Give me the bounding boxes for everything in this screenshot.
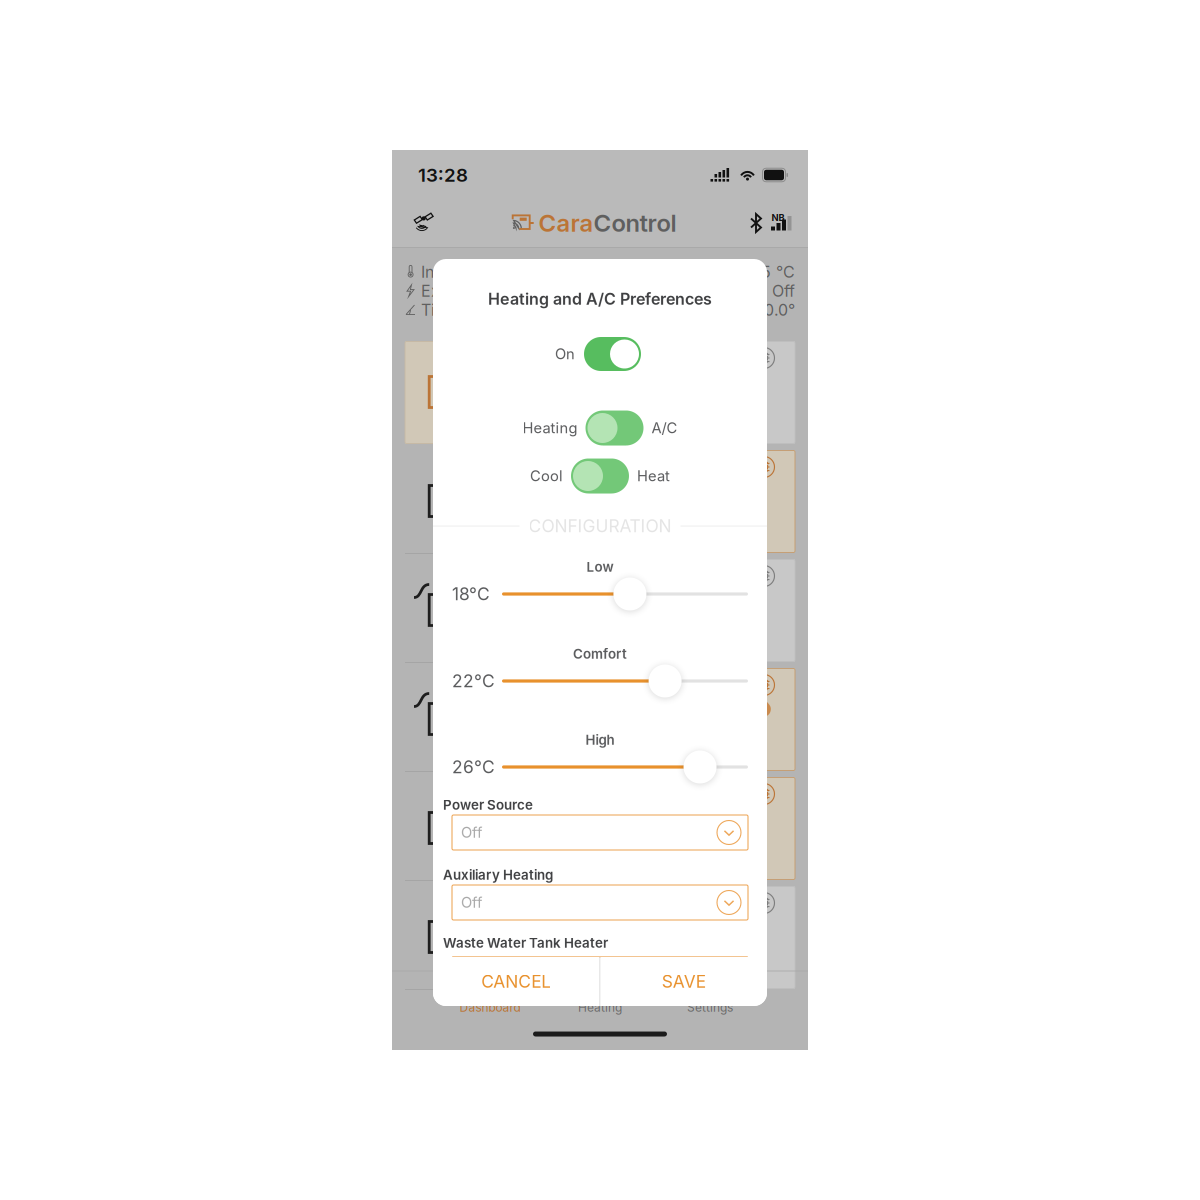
button[interactable]: Cool or Heat — [571, 458, 629, 493]
button[interactable]: Off — [452, 885, 748, 920]
staticText: On — [555, 345, 575, 363]
staticText: Heating — [522, 419, 577, 437]
staticText: SAVE — [662, 971, 706, 992]
staticText: NB — [771, 212, 784, 223]
staticText: Control — [593, 208, 676, 237]
staticText: Settings — [687, 1000, 733, 1015]
staticText: Inside temperature — [421, 262, 561, 282]
button[interactable]: Settings — [655, 973, 765, 1017]
staticText: Tilt — [421, 300, 444, 320]
staticText: A/C — [651, 419, 677, 437]
staticText: Off — [772, 281, 795, 301]
staticText: Low — [586, 559, 613, 575]
staticText: 0.0° / 0.0° — [717, 300, 795, 320]
staticText: CONFIGURATION — [528, 515, 671, 536]
staticText: Off — [461, 894, 482, 911]
button[interactable]: Heating on — [584, 337, 641, 371]
staticText: Comfort — [573, 646, 627, 662]
staticText: 13:28 — [418, 164, 468, 186]
staticText: External Power — [421, 281, 534, 301]
staticText: 22°C — [452, 670, 495, 691]
staticText: 21.5 °C — [740, 262, 795, 282]
staticText: CANCEL — [481, 971, 551, 992]
staticText: Heat — [637, 467, 670, 485]
staticText: Power Source — [443, 797, 533, 813]
staticText: Waste Water Tank Heater — [443, 935, 608, 951]
button[interactable]: Heating or A/C — [585, 410, 643, 445]
staticText: Cool — [530, 467, 563, 485]
staticText: 18°C — [452, 583, 490, 604]
button[interactable]: Off — [452, 815, 748, 850]
button[interactable]: Heating — [545, 973, 655, 1017]
button[interactable]: SAVE — [600, 957, 767, 1006]
staticText: 26°C — [452, 756, 495, 777]
button[interactable]: CANCEL — [433, 957, 599, 1006]
button[interactable]: Dashboard — [435, 973, 545, 1017]
staticText: Heating and A/C Preferences — [488, 289, 712, 309]
button[interactable]: Connection status — [408, 209, 440, 237]
staticText: High — [585, 732, 614, 748]
staticText: Dashboard — [459, 1000, 520, 1015]
staticText: Heating — [578, 1000, 622, 1015]
staticText: Auxiliary Heating — [443, 867, 553, 883]
staticText: Off — [461, 824, 482, 841]
staticText: Cara — [538, 208, 593, 237]
